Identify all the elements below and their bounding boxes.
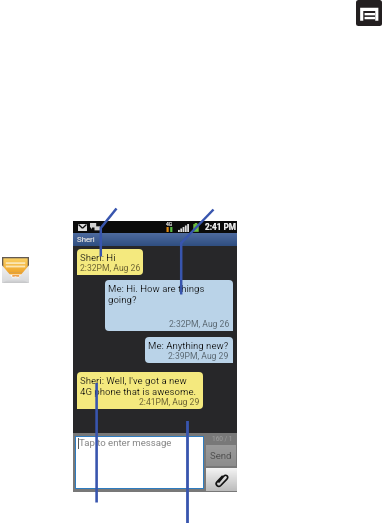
staticText: Me: Hi. How are things going?: [108, 283, 230, 305]
staticText: 2:39PM, Aug 29: [168, 351, 229, 361]
staticText: Sheri: Hi: [80, 252, 116, 263]
button[interactable]: Attach: [206, 468, 237, 491]
staticText: Sheri: [77, 235, 95, 244]
staticText: Sheri: Well, I've got a new 4G phone tha…: [80, 375, 200, 397]
button[interactable]: Tap to enter message: [75, 436, 204, 489]
staticText: 4G: [166, 221, 173, 227]
button[interactable]: Sheri: Hi: [77, 249, 143, 275]
button[interactable]: Me: Anything new?: [145, 337, 233, 363]
button[interactable]: Me: Hi. How are things going?: [105, 280, 233, 331]
button[interactable]: Sheri: Well, I've got a new 4G phone tha…: [77, 372, 203, 409]
staticText: 2:32PM, Aug 26: [169, 319, 230, 329]
staticText: 2:32PM, Aug 26: [80, 263, 140, 273]
button[interactable]: Send: [206, 445, 236, 466]
staticText: 2:41 PM: [205, 222, 236, 232]
staticText: 160 / 1: [212, 435, 233, 443]
staticText: Tap to enter message: [79, 437, 172, 448]
staticText: Send: [210, 450, 232, 461]
staticText: Me: Anything new?: [148, 340, 229, 351]
staticText: 2:41PM, Aug 29: [139, 397, 200, 407]
button[interactable]: Messaging: [356, 0, 382, 26]
